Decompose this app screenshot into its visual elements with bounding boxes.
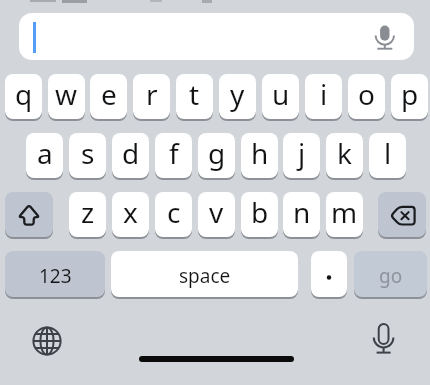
staticText: b: [251, 193, 269, 231]
staticText: i: [320, 75, 328, 113]
staticText: z: [81, 193, 95, 231]
staticText: go: [379, 263, 403, 289]
button[interactable]: r: [133, 74, 170, 119]
button[interactable]: [5, 192, 53, 237]
staticText: v: [209, 193, 224, 231]
staticText: e: [101, 75, 117, 113]
staticText: n: [293, 193, 311, 231]
button[interactable]: c: [155, 192, 192, 237]
staticText: x: [123, 193, 138, 231]
button[interactable]: h: [241, 133, 278, 178]
staticText: q: [15, 75, 33, 113]
staticText: h: [251, 134, 269, 172]
button[interactable]: [378, 192, 426, 237]
button[interactable]: m: [326, 192, 363, 237]
button[interactable]: p: [391, 74, 428, 119]
button[interactable]: w: [48, 74, 85, 119]
staticText: 123: [39, 263, 72, 289]
staticText: u: [272, 75, 290, 113]
button[interactable]: s: [69, 133, 106, 178]
staticText: p: [401, 75, 419, 113]
button[interactable]: t: [176, 74, 213, 119]
staticText: m: [331, 193, 358, 231]
button[interactable]: l: [369, 133, 406, 178]
staticText: d: [122, 134, 140, 172]
button[interactable]: u: [262, 74, 299, 119]
staticText: g: [208, 134, 226, 172]
button[interactable]: space: [111, 251, 298, 297]
staticText: j: [298, 134, 306, 172]
button[interactable]: n: [283, 192, 320, 237]
button[interactable]: g: [198, 133, 235, 178]
button[interactable]: x: [112, 192, 149, 237]
staticText: t: [189, 75, 200, 113]
staticText: space: [179, 263, 231, 289]
staticText: o: [358, 75, 375, 113]
button[interactable]: f: [155, 133, 192, 178]
staticText: c: [167, 193, 181, 231]
button[interactable]: j: [283, 133, 320, 178]
button[interactable]: z: [69, 192, 106, 237]
staticText: y: [230, 75, 245, 113]
staticText: f: [169, 134, 179, 172]
button[interactable]: b: [241, 192, 278, 237]
staticText: w: [55, 75, 78, 113]
button[interactable]: e: [90, 74, 127, 119]
button[interactable]: [366, 318, 402, 360]
button[interactable]: go: [354, 251, 427, 297]
staticText: s: [81, 134, 95, 172]
button[interactable]: k: [326, 133, 363, 178]
button[interactable]: o: [348, 74, 385, 119]
button[interactable]: [19, 13, 414, 60]
button[interactable]: [311, 251, 347, 297]
button[interactable]: y: [219, 74, 256, 119]
staticText: l: [384, 134, 392, 172]
button[interactable]: v: [198, 192, 235, 237]
button[interactable]: 123: [5, 251, 105, 297]
button[interactable]: a: [26, 133, 63, 178]
button[interactable]: q: [5, 74, 42, 119]
button[interactable]: i: [305, 74, 342, 119]
staticText: a: [37, 134, 53, 172]
button[interactable]: [27, 321, 67, 361]
staticText: r: [146, 75, 158, 113]
button[interactable]: d: [112, 133, 149, 178]
staticText: k: [337, 134, 352, 172]
